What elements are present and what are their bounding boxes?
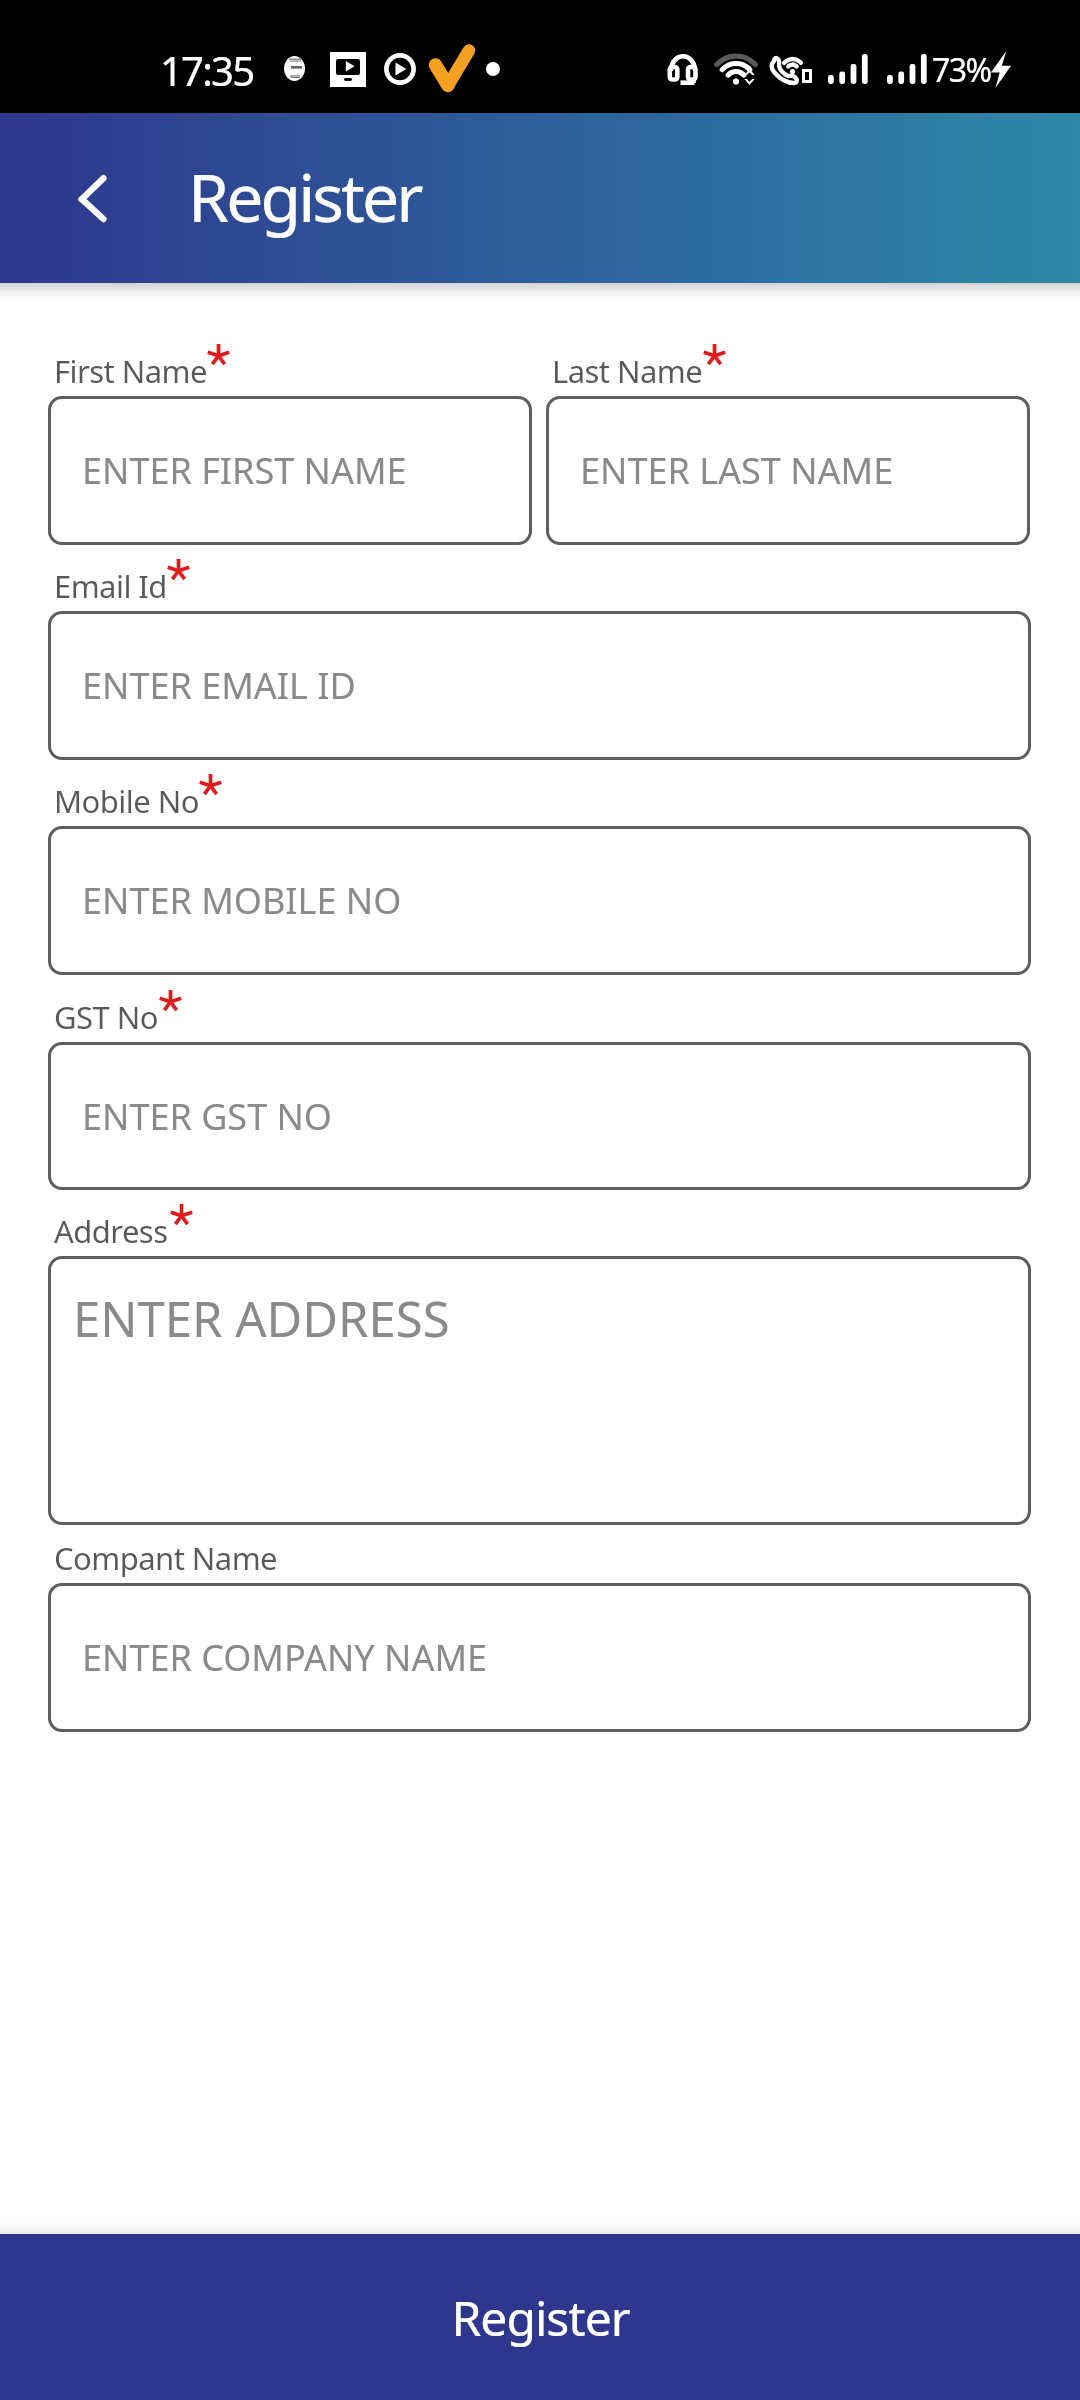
button[interactable]: ENTER EMAIL ID [48,611,1031,760]
staticText: 17:35 [160,43,254,97]
staticText: ENTER COMPANY NAME [82,1633,488,1682]
staticText: Address [54,1210,168,1252]
button[interactable]: ENTER GST NO [48,1042,1031,1190]
button[interactable]: ENTER ADDRESS [48,1256,1031,1525]
staticText: 73% [932,48,991,92]
button[interactable]: ENTER FIRST NAME [48,396,532,545]
staticText: First Name [54,350,207,392]
staticText: Register [188,151,421,241]
staticText: ENTER GST NO [82,1092,332,1141]
staticText: Register [451,2285,630,2350]
staticText: Mobile No [54,780,199,822]
button[interactable]: Back [60,165,124,229]
staticText: Last Name [552,350,703,392]
staticText: Email Id [54,565,167,607]
staticText: GST No [54,996,158,1038]
staticText: ENTER EMAIL ID [82,661,356,710]
staticText: ENTER FIRST NAME [82,446,407,495]
staticText: ENTER LAST NAME [580,446,894,495]
staticText: Compant Name [54,1537,278,1579]
staticText: ENTER ADDRESS [73,1285,450,1352]
button[interactable]: Register [0,2234,1080,2400]
staticText: ENTER MOBILE NO [82,876,402,925]
button[interactable]: ENTER COMPANY NAME [48,1583,1031,1732]
button[interactable]: ENTER LAST NAME [546,396,1030,545]
button[interactable]: ENTER MOBILE NO [48,826,1031,975]
